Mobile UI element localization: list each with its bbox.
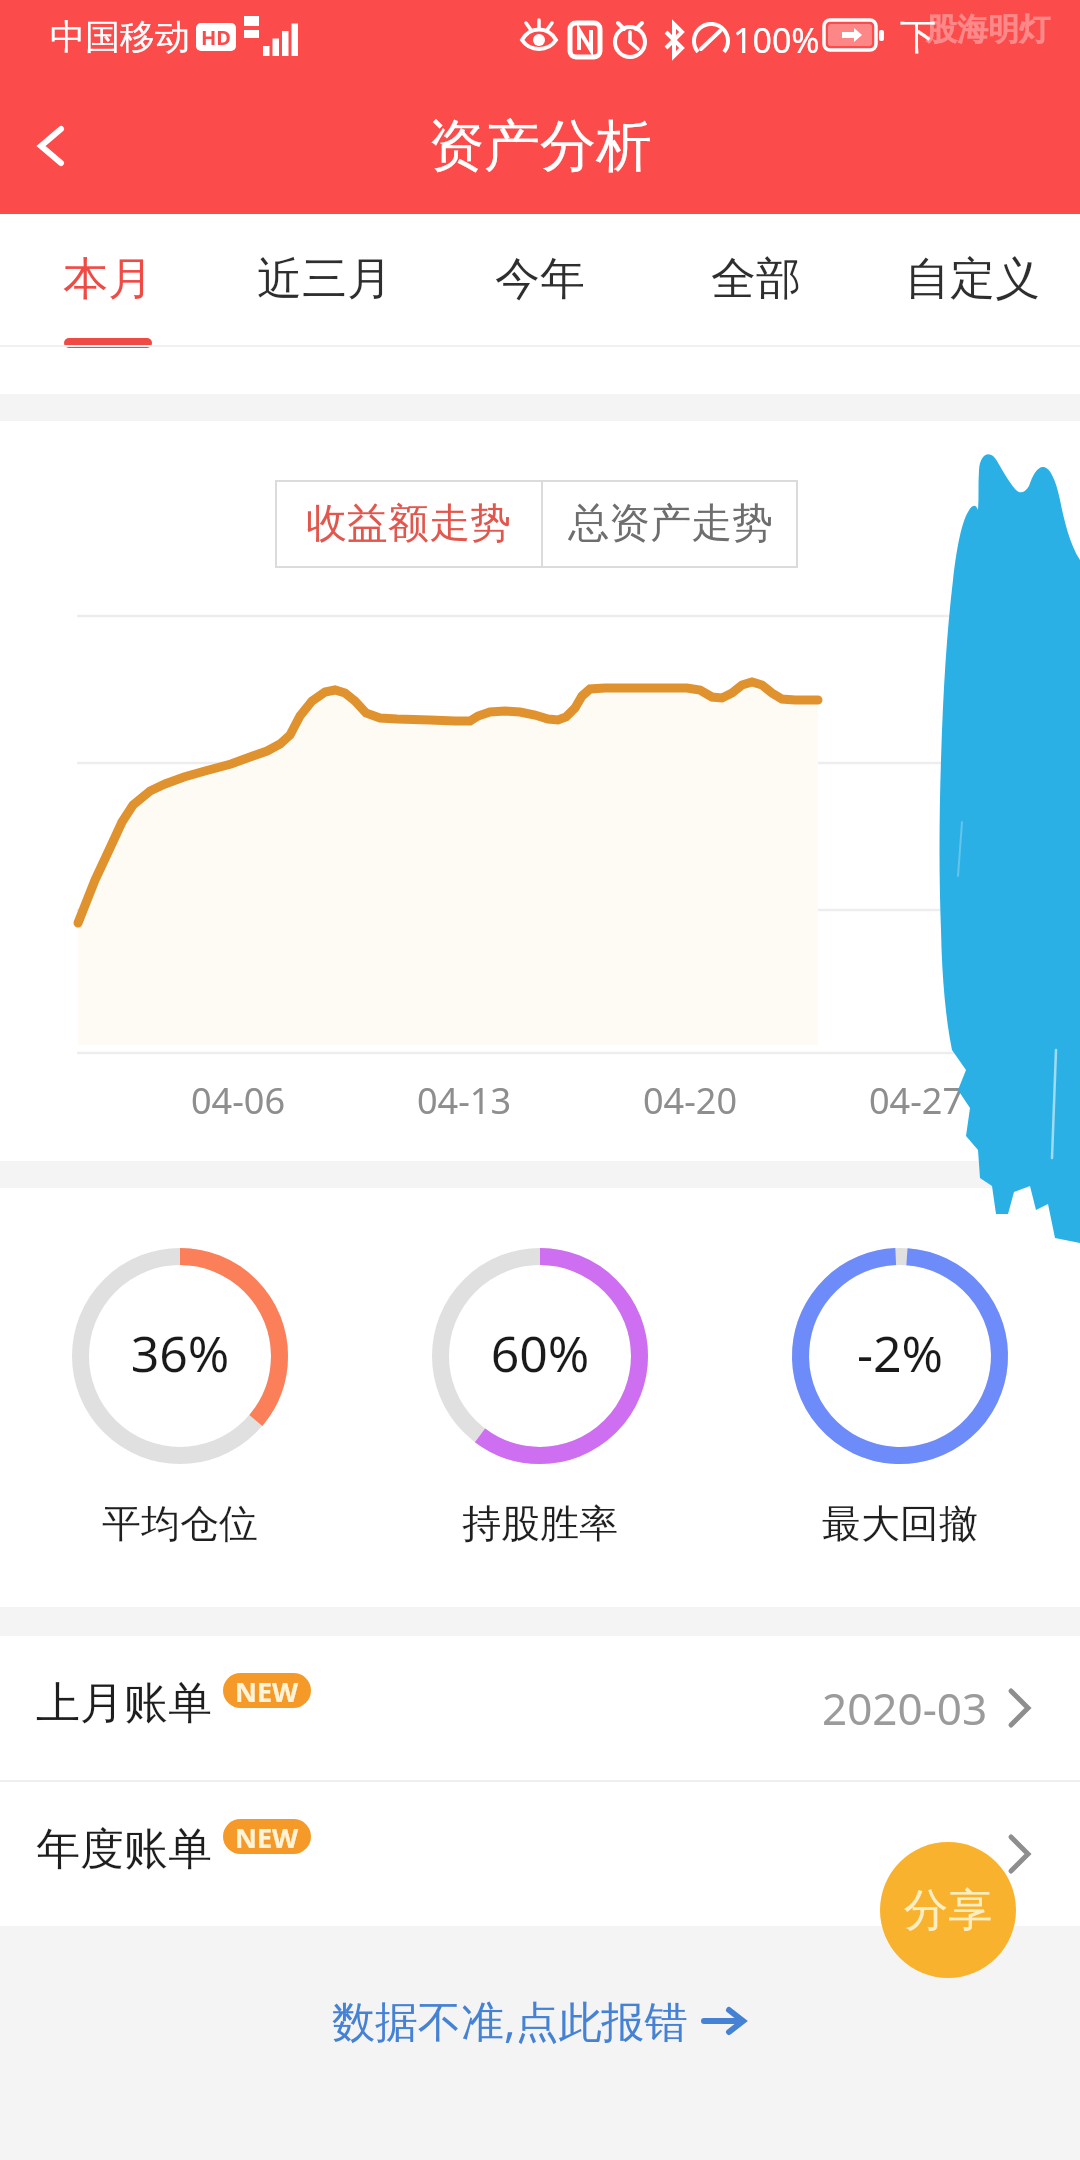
button[interactable]: 总资产走势 [543,480,798,568]
staticText: 分享 [904,1883,992,1938]
staticText: 年度账单 [36,1822,212,1877]
staticText: 60% [428,1319,652,1387]
staticText: 上月账单 [36,1676,212,1731]
staticText: NEW [235,1819,299,1854]
staticText: HD [201,24,231,51]
staticText: 04-20 [590,1076,790,1125]
button[interactable]: 数据不准,点此报错 [332,1991,748,2050]
staticText: 资产分析 [428,111,652,182]
button[interactable]: 分享 [880,1842,1016,1978]
button[interactable]: 上月账单 [0,1636,1080,1780]
staticText: 04-06 [138,1076,338,1125]
button[interactable]: 全部 [648,214,864,394]
staticText: 持股胜率 [428,1499,652,1548]
staticText: 最大回撤 [788,1499,1012,1548]
staticText: 04-27 [816,1076,1016,1125]
staticText: 今年 [495,251,585,308]
staticText: 全部 [711,251,801,308]
button[interactable]: 本月 [0,214,216,394]
staticText: 中国移动 [50,15,190,59]
button[interactable]: 60% [428,1244,652,1544]
staticText: NEW [235,1673,299,1708]
staticText: 收益额走势 [306,498,511,550]
staticText: 2020-03 [822,1678,988,1738]
button[interactable]: Back [0,91,110,201]
staticText: 总资产走势 [568,498,773,550]
staticText: 自定义 [905,251,1040,308]
staticText: 36% [68,1319,292,1387]
staticText: 下 [900,14,936,59]
button[interactable]: 年度账单 [0,1782,1080,1926]
staticText: 100% [733,17,820,63]
staticText: 股海明灯 [926,10,1050,49]
staticText: 近三月 [257,251,392,308]
button[interactable]: 自定义 [864,214,1080,394]
staticText: 平均仓位 [68,1499,292,1548]
staticText: 数据不准,点此报错 [332,1991,688,2050]
button[interactable]: -2% [788,1244,1012,1544]
button[interactable]: 今年 [432,214,648,394]
button[interactable]: 近三月 [216,214,432,394]
staticText: -2% [788,1319,1012,1387]
button[interactable]: 收益额走势 [275,480,541,568]
staticText: 本月 [63,251,153,308]
staticText: 04-13 [364,1076,564,1125]
button[interactable]: 36% [68,1244,292,1544]
